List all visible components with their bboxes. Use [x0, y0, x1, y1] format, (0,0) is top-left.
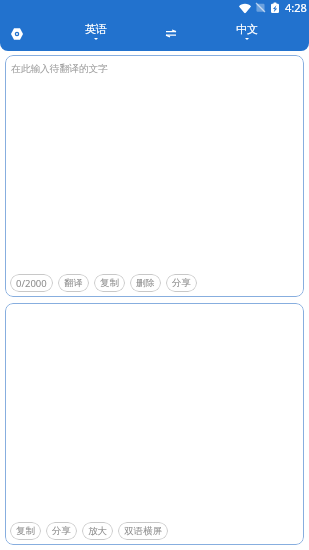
button[interactable]: 复制 — [10, 522, 41, 540]
staticText: 翻译 — [64, 277, 83, 289]
button[interactable]: 删除 — [130, 274, 161, 292]
staticText: 在此输入待翻译的文字 — [11, 63, 108, 75]
button[interactable]: 放大 — [82, 522, 113, 540]
button[interactable]: 翻译 — [58, 274, 89, 292]
button[interactable]: Translation result field — [5, 303, 304, 545]
staticText: 中文 — [236, 22, 258, 36]
staticText: 复制 — [100, 277, 119, 289]
staticText: 复制 — [16, 525, 35, 537]
button[interactable]: 英语 — [71, 22, 121, 40]
staticText: 分享 — [172, 277, 191, 289]
button[interactable]: Translation input field — [5, 55, 304, 297]
staticText: 放大 — [88, 525, 107, 537]
button[interactable]: 0/2000 — [10, 274, 53, 292]
staticText: 4:28 — [285, 0, 307, 15]
button[interactable]: 分享 — [166, 274, 197, 292]
button[interactable]: 复制 — [94, 274, 125, 292]
staticText: 分享 — [52, 525, 71, 537]
staticText: 双语横屏 — [124, 525, 162, 537]
button[interactable]: 双语横屏 — [118, 522, 168, 540]
button[interactable]: Swap languages — [157, 19, 185, 47]
button[interactable]: 中文 — [222, 22, 272, 40]
button[interactable]: 分享 — [46, 522, 77, 540]
staticText: 英语 — [85, 22, 107, 36]
staticText: 0/2000 — [16, 277, 47, 290]
button[interactable]: Settings — [3, 20, 31, 48]
staticText: 删除 — [136, 277, 155, 289]
